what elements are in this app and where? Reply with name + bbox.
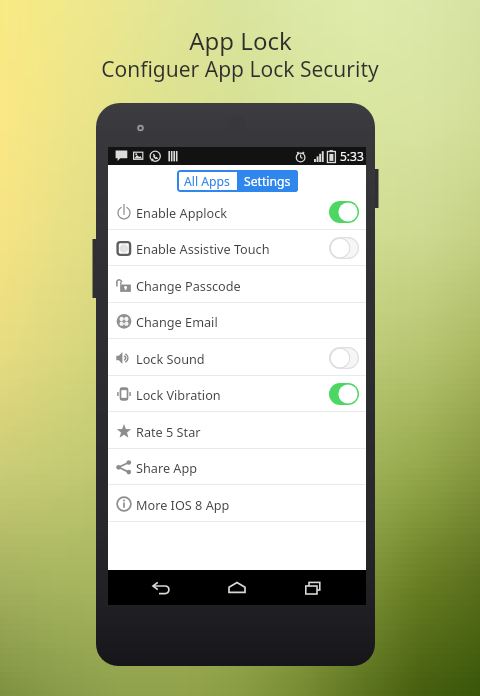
button[interactable]: Rate 5 Star [108,413,366,449]
button[interactable]: Enable Assistive Touch [108,230,366,266]
button[interactable]: Home [214,572,260,604]
button[interactable]: Change Passcode [108,267,366,303]
button[interactable] [329,383,359,405]
staticText: App Lock [189,24,292,57]
staticText: Change Passcode [136,277,241,294]
staticText: More IOS 8 App [136,496,230,513]
staticText: Share App [136,459,198,476]
button[interactable] [329,347,359,369]
button[interactable]: Back [138,572,184,604]
button[interactable]: All Apps [177,170,237,192]
button[interactable]: Recents [290,572,336,604]
button[interactable]: Settings [237,170,298,192]
staticText: Enable Assistive Touch [136,240,270,257]
staticText: Change Email [136,313,218,330]
staticText: Enable Applock [136,204,228,221]
staticText: 5:33 [340,148,364,164]
button[interactable]: Lock Vibration [108,376,366,412]
button[interactable]: Enable Applock [108,194,366,230]
button[interactable]: Share App [108,449,366,485]
staticText: Lock Sound [136,350,205,367]
button[interactable]: Lock Sound [108,340,366,376]
button[interactable]: Change Email [108,303,366,339]
staticText: Configuer App Lock Security [101,55,379,84]
staticText: Settings [244,173,291,190]
button[interactable] [329,201,359,223]
button[interactable]: More IOS 8 App [108,486,366,522]
button[interactable] [329,237,359,259]
staticText: Lock Vibration [136,386,221,403]
staticText: All Apps [184,173,230,190]
staticText: Rate 5 Star [136,423,201,440]
